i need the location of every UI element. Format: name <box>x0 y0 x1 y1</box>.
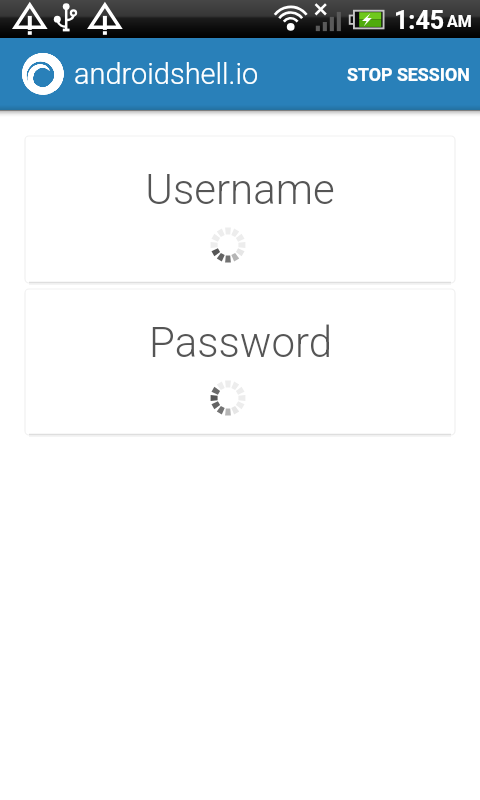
button[interactable]: androidshell.io logo <box>22 53 64 95</box>
staticText: AM <box>447 12 472 31</box>
staticText: Password <box>149 318 332 367</box>
button[interactable]: STOP SESSION <box>335 54 480 95</box>
staticText: 1:45 <box>394 6 445 35</box>
staticText: Username <box>145 165 335 214</box>
button[interactable]: Username <box>25 136 455 283</box>
staticText: STOP SESSION <box>347 64 470 85</box>
button[interactable]: Password <box>25 289 455 435</box>
staticText: androidshell.io <box>74 57 259 91</box>
